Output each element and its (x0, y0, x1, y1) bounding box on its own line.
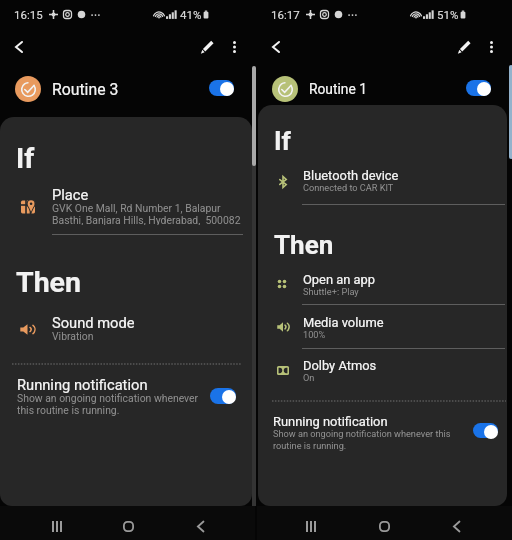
button[interactable]: More options (220, 33, 248, 61)
staticText: On (303, 372, 315, 383)
button[interactable]: Media volume (258, 315, 507, 355)
button[interactable]: Edit (193, 33, 221, 61)
button[interactable]: Routine enabled (466, 80, 493, 96)
button[interactable]: Home (370, 512, 398, 540)
button[interactable]: Running notification (273, 414, 451, 452)
button[interactable]: Navigate up (5, 33, 33, 61)
button[interactable]: Place (0, 186, 252, 226)
button[interactable]: Routine 3 (0, 72, 255, 106)
staticText: Running notification (273, 414, 388, 429)
button[interactable]: More options (477, 33, 505, 61)
staticText: 16:15 (14, 8, 43, 21)
staticText: Show an ongoing notification whenever th… (273, 428, 451, 451)
staticText: Open an app (303, 272, 376, 287)
button[interactable]: Back (186, 512, 214, 540)
button[interactable]: Open an app (258, 272, 507, 312)
staticText: 51% (437, 8, 459, 21)
staticText: Place (52, 186, 89, 203)
button[interactable]: Back (442, 512, 470, 540)
staticText: GVK One Mall, Rd Number 1, Balapur Basth… (52, 202, 241, 225)
staticText: Show an ongoing notification whenever th… (17, 392, 199, 417)
staticText: If (274, 126, 291, 156)
staticText: Then (274, 230, 334, 260)
button[interactable]: Edit (450, 33, 478, 61)
staticText: Then (16, 266, 81, 299)
button[interactable]: Running notification on (473, 423, 501, 438)
button[interactable]: Routine 1 (257, 72, 512, 106)
staticText: 100% (303, 329, 326, 340)
staticText: Vibration (52, 330, 94, 342)
staticText: Routine 1 (309, 81, 367, 97)
button[interactable]: Sound mode (0, 314, 252, 354)
staticText: Shuttle+: Play (303, 286, 359, 297)
button[interactable]: Bluetooth device (258, 168, 507, 208)
staticText: Media volume (303, 315, 384, 330)
button[interactable]: Dolby Atmos (258, 358, 507, 398)
button[interactable]: Navigate up (262, 33, 290, 61)
staticText: 41% (180, 8, 202, 21)
staticText: Bluetooth device (303, 168, 399, 183)
staticText: Routine 3 (52, 80, 119, 99)
button[interactable]: Running notification (17, 376, 199, 418)
button[interactable]: Running notification on (210, 388, 239, 404)
staticText: Running notification (17, 376, 148, 393)
staticText: 16:17 (271, 8, 300, 21)
button[interactable]: Recents (297, 512, 325, 540)
staticText: Dolby Atmos (303, 358, 377, 373)
button[interactable]: Recents (43, 512, 71, 540)
button[interactable]: Home (114, 512, 142, 540)
staticText: Sound mode (52, 314, 135, 331)
button[interactable]: Routine enabled (209, 80, 236, 96)
staticText: If (16, 142, 35, 175)
staticText: Connected to CAR KIT (303, 182, 394, 193)
